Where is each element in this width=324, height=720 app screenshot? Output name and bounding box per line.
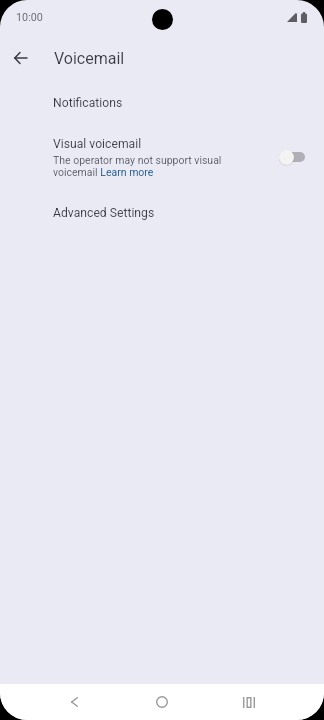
button[interactable]: Recent apps [205,684,292,720]
button[interactable]: Back [31,684,118,720]
staticText: Advanced Settings [53,206,155,220]
staticText: Notifications [53,96,123,110]
staticText: The operator may not support visual voic… [53,154,225,178]
staticText: 10:00 [16,11,43,24]
button[interactable]: Notifications [0,90,324,116]
button[interactable]: Back [7,44,34,71]
button[interactable]: Visual voicemail [0,131,324,183]
button[interactable]: Advanced Settings [0,200,324,226]
staticText: Visual voicemail [53,137,142,151]
button[interactable]: Home [118,684,205,720]
staticText: Voicemail [54,49,125,68]
